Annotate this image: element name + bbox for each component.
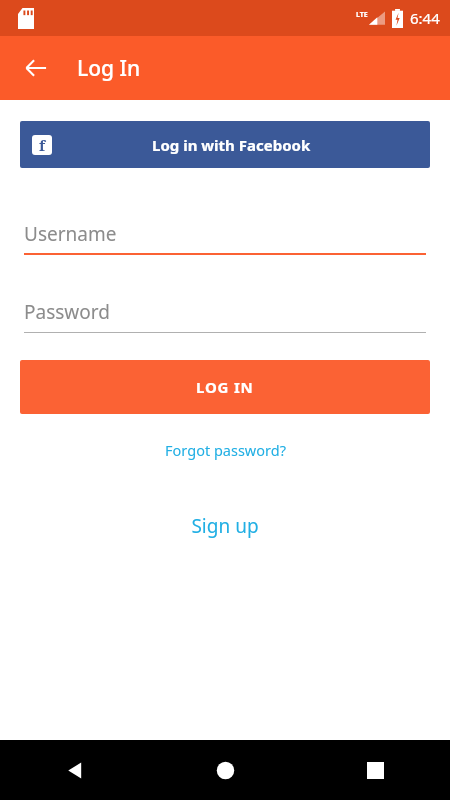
button[interactable]: Home [150, 740, 300, 800]
button[interactable]: Username [24, 221, 426, 255]
staticText: f [39, 135, 46, 155]
button[interactable]: Back [12, 44, 60, 92]
button[interactable]: Recent apps [300, 740, 450, 800]
staticText: Password [24, 299, 110, 325]
staticText: Log In [77, 54, 141, 83]
staticText: Sign up [191, 513, 259, 539]
staticText: LTE [356, 10, 368, 20]
staticText: LOG IN [196, 377, 254, 397]
button[interactable]: LOG IN [20, 360, 430, 414]
button[interactable]: Forgot password? [149, 436, 302, 464]
button[interactable]: f [20, 121, 430, 168]
staticText: Username [24, 221, 117, 247]
staticText: Forgot password? [165, 440, 286, 460]
button[interactable]: Password [24, 299, 426, 333]
staticText: Log in with Facebook [152, 135, 311, 155]
button[interactable]: Sign up [175, 509, 275, 543]
staticText: 6:44 [410, 8, 440, 28]
button[interactable]: Back [0, 740, 150, 800]
